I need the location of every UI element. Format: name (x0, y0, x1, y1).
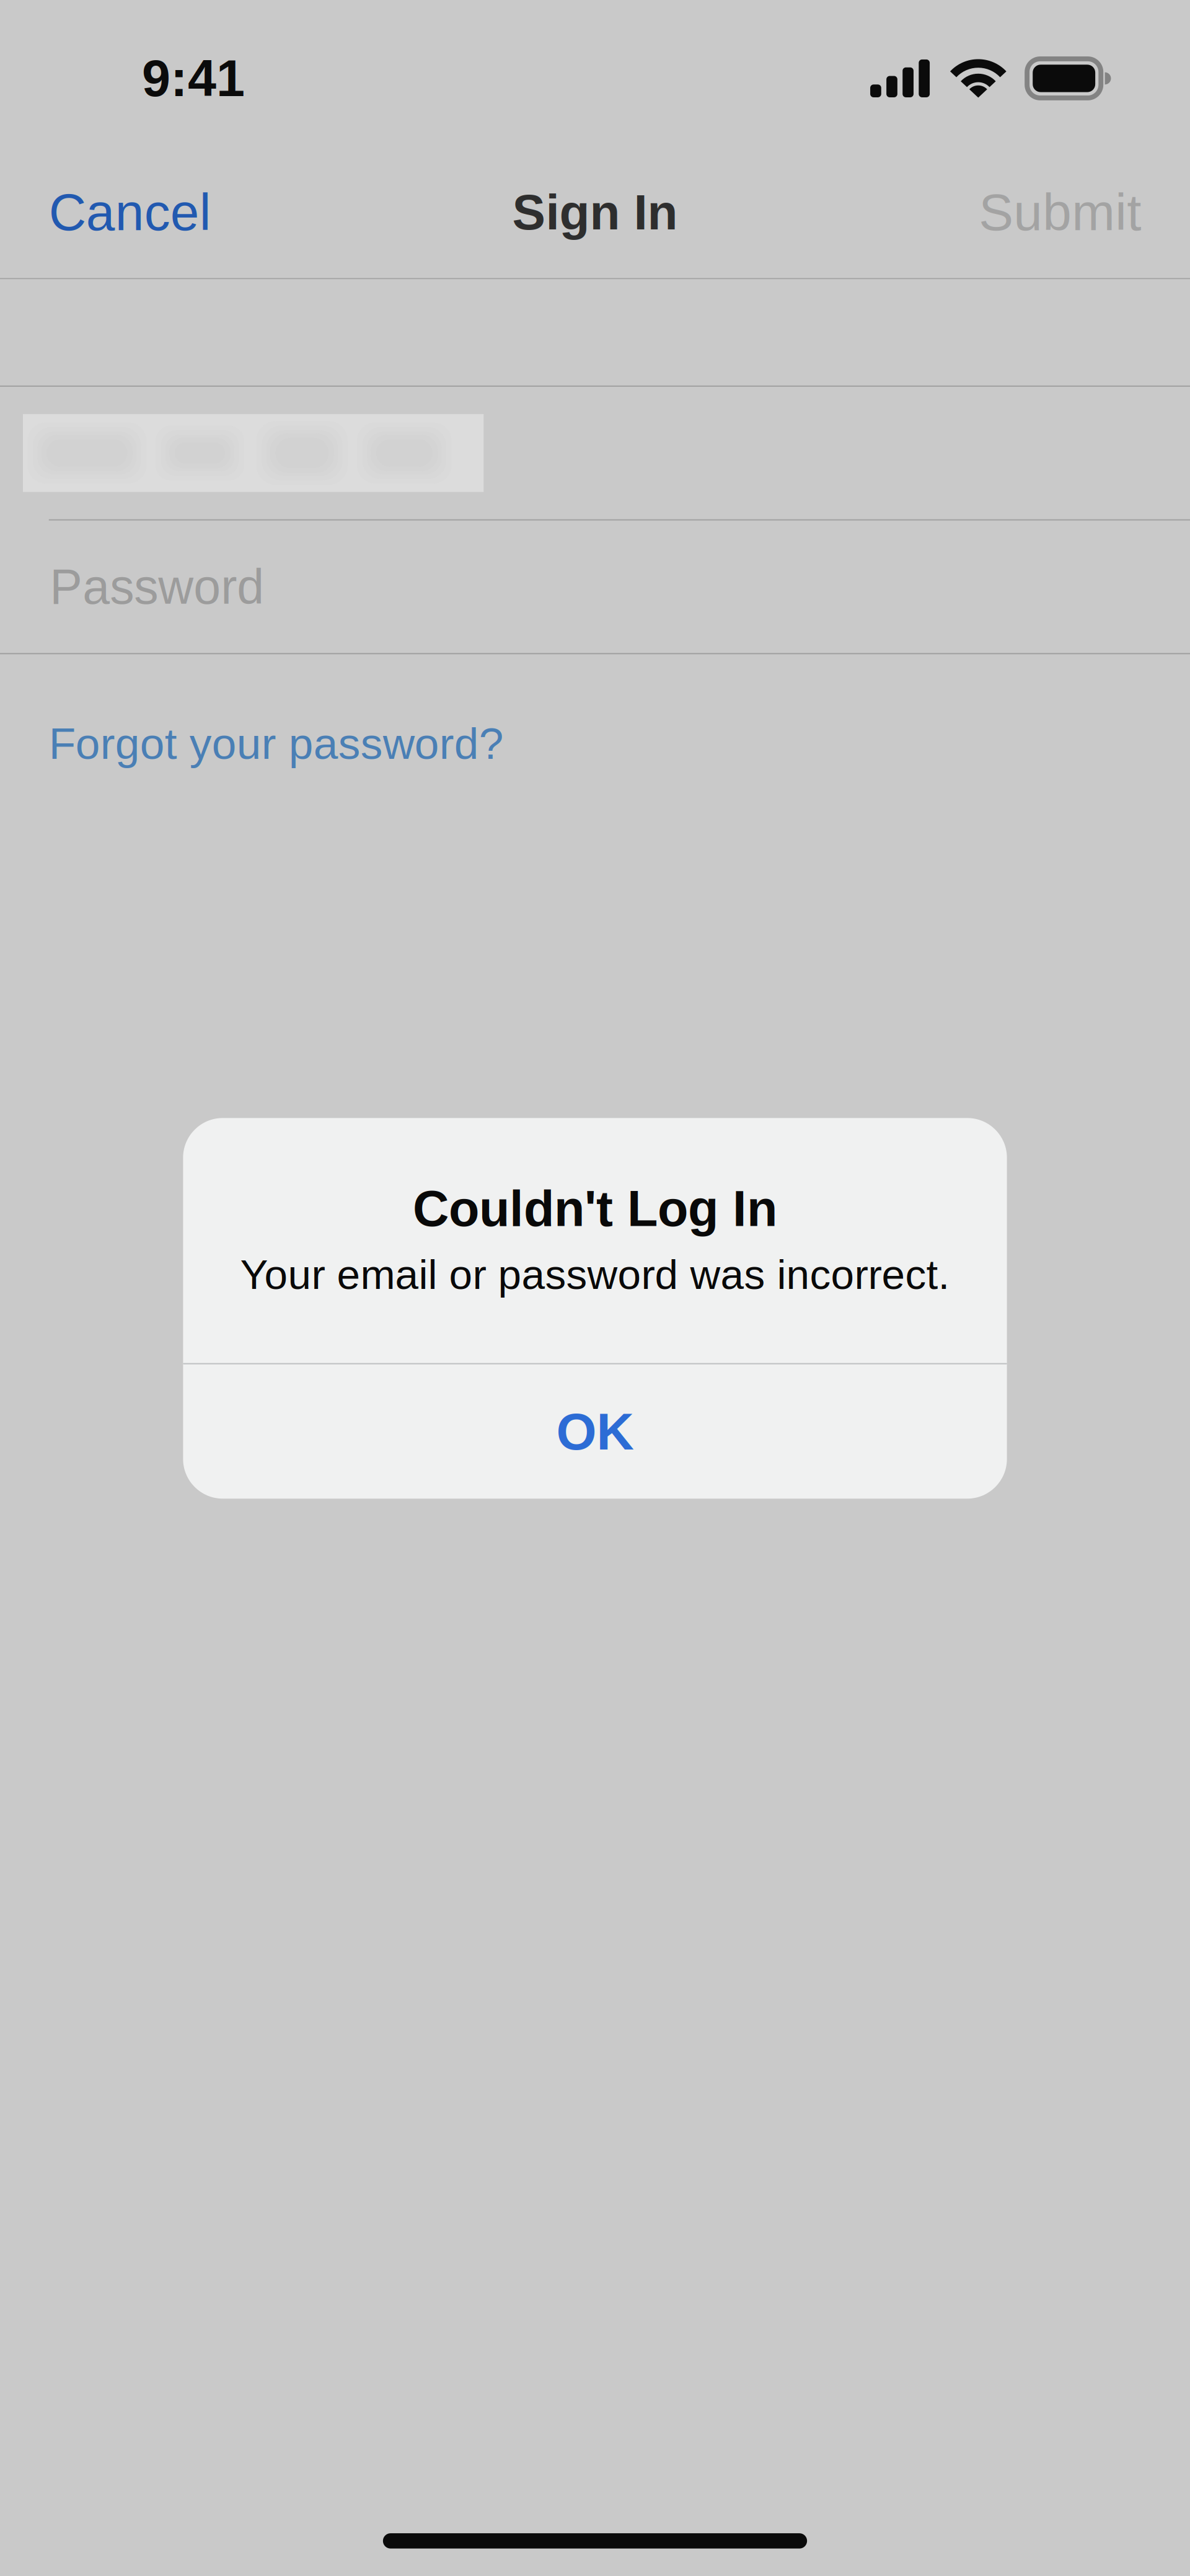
staticText: Password (50, 559, 264, 614)
button[interactable]: Cancel (0, 145, 260, 279)
staticText: Forgot your password? (49, 719, 504, 768)
button[interactable]: OK (183, 1364, 1007, 1499)
button[interactable]: Forgot your password? (0, 692, 553, 796)
staticText: Submit (979, 183, 1141, 241)
staticText: Sign In (512, 184, 678, 240)
staticText: Your email or password was incorrect. (240, 1251, 950, 1298)
staticText: Couldn't Log In (413, 1181, 777, 1237)
staticText: Cancel (49, 183, 211, 241)
staticText: OK (556, 1403, 634, 1460)
button[interactable]: Submit (930, 145, 1190, 279)
staticText: 9:41 (142, 50, 245, 107)
